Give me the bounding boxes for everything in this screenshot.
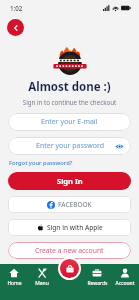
staticText: Sign in to continue the checkout bbox=[0, 98, 139, 106]
button[interactable]: Menu bbox=[28, 268, 56, 287]
staticText: Sign in with Apple bbox=[47, 223, 103, 232]
button[interactable]: Sign In bbox=[8, 172, 131, 190]
button[interactable]: Cart bbox=[60, 259, 79, 278]
staticText: Almost done :) bbox=[0, 79, 139, 95]
button[interactable]: Enter your password bbox=[8, 137, 131, 155]
staticText: FACEBOOK bbox=[58, 200, 92, 209]
staticText: 1:02 bbox=[10, 4, 23, 12]
staticText: Account bbox=[115, 280, 135, 287]
staticText: Rewards bbox=[87, 280, 108, 287]
staticText: Create a new account bbox=[35, 246, 104, 255]
button[interactable]: Back bbox=[7, 19, 24, 36]
button[interactable]: Account bbox=[111, 268, 139, 287]
button[interactable]: Create a new account bbox=[8, 242, 131, 259]
button[interactable]: Rewards bbox=[83, 268, 111, 287]
button[interactable]: Sign in with Apple bbox=[8, 219, 131, 236]
staticText: Enter your password bbox=[36, 141, 104, 151]
button[interactable]: Enter your E-mail bbox=[8, 113, 131, 131]
other: Show password bbox=[115, 142, 124, 151]
staticText: Forgot your password? bbox=[9, 159, 73, 167]
button[interactable]: FACEBOOK bbox=[8, 196, 131, 213]
staticText: Home bbox=[7, 280, 22, 287]
staticText: Sign In bbox=[57, 176, 83, 186]
button[interactable]: Home bbox=[0, 268, 28, 287]
button[interactable]: Forgot your password? bbox=[9, 159, 73, 167]
staticText: Enter your E-mail bbox=[41, 117, 98, 127]
staticText: Menu bbox=[35, 280, 49, 287]
